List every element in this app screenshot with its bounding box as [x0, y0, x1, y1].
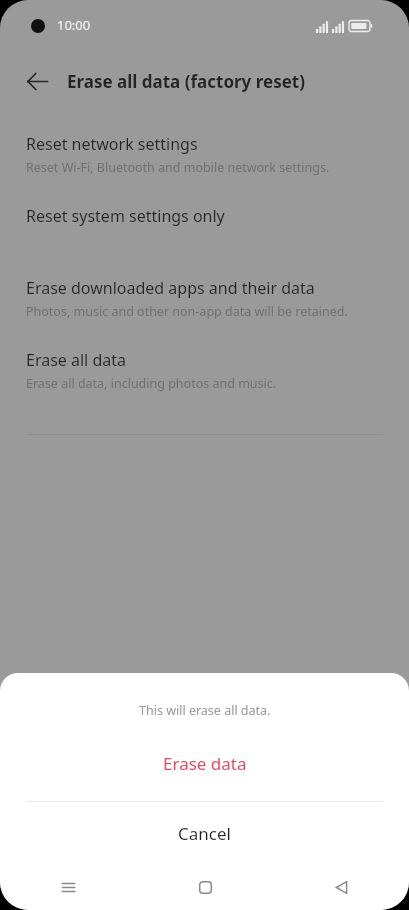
staticText: Reset network settings: [26, 133, 198, 155]
staticText: Photos, music and other non-app data wil…: [26, 303, 348, 320]
button[interactable]: Back: [16, 60, 58, 102]
button[interactable]: Erase all data: [0, 340, 409, 412]
staticText: Erase all data (factory reset): [67, 70, 305, 93]
staticText: Reset system settings only: [26, 205, 225, 227]
staticText: Erase downloaded apps and their data: [26, 277, 315, 299]
staticText: 10:00: [57, 16, 91, 34]
button[interactable]: Reset network settings: [0, 124, 409, 196]
button[interactable]: Back: [273, 864, 409, 910]
button[interactable]: Home: [137, 864, 273, 910]
staticText: Cancel: [178, 822, 231, 845]
button[interactable]: Erase data: [0, 739, 409, 787]
staticText: Erase data: [163, 752, 247, 775]
button[interactable]: Cancel: [0, 802, 409, 864]
staticText: Erase all data: [26, 349, 126, 371]
button[interactable]: Erase downloaded apps and their data: [0, 268, 409, 340]
staticText: Erase all data, including photos and mus…: [26, 375, 277, 392]
button[interactable]: Recent apps: [0, 864, 137, 910]
staticText: Reset Wi-Fi, Bluetooth and mobile networ…: [26, 159, 330, 176]
button[interactable]: Reset system settings only: [0, 196, 409, 268]
staticText: This will erase all data.: [139, 702, 271, 719]
